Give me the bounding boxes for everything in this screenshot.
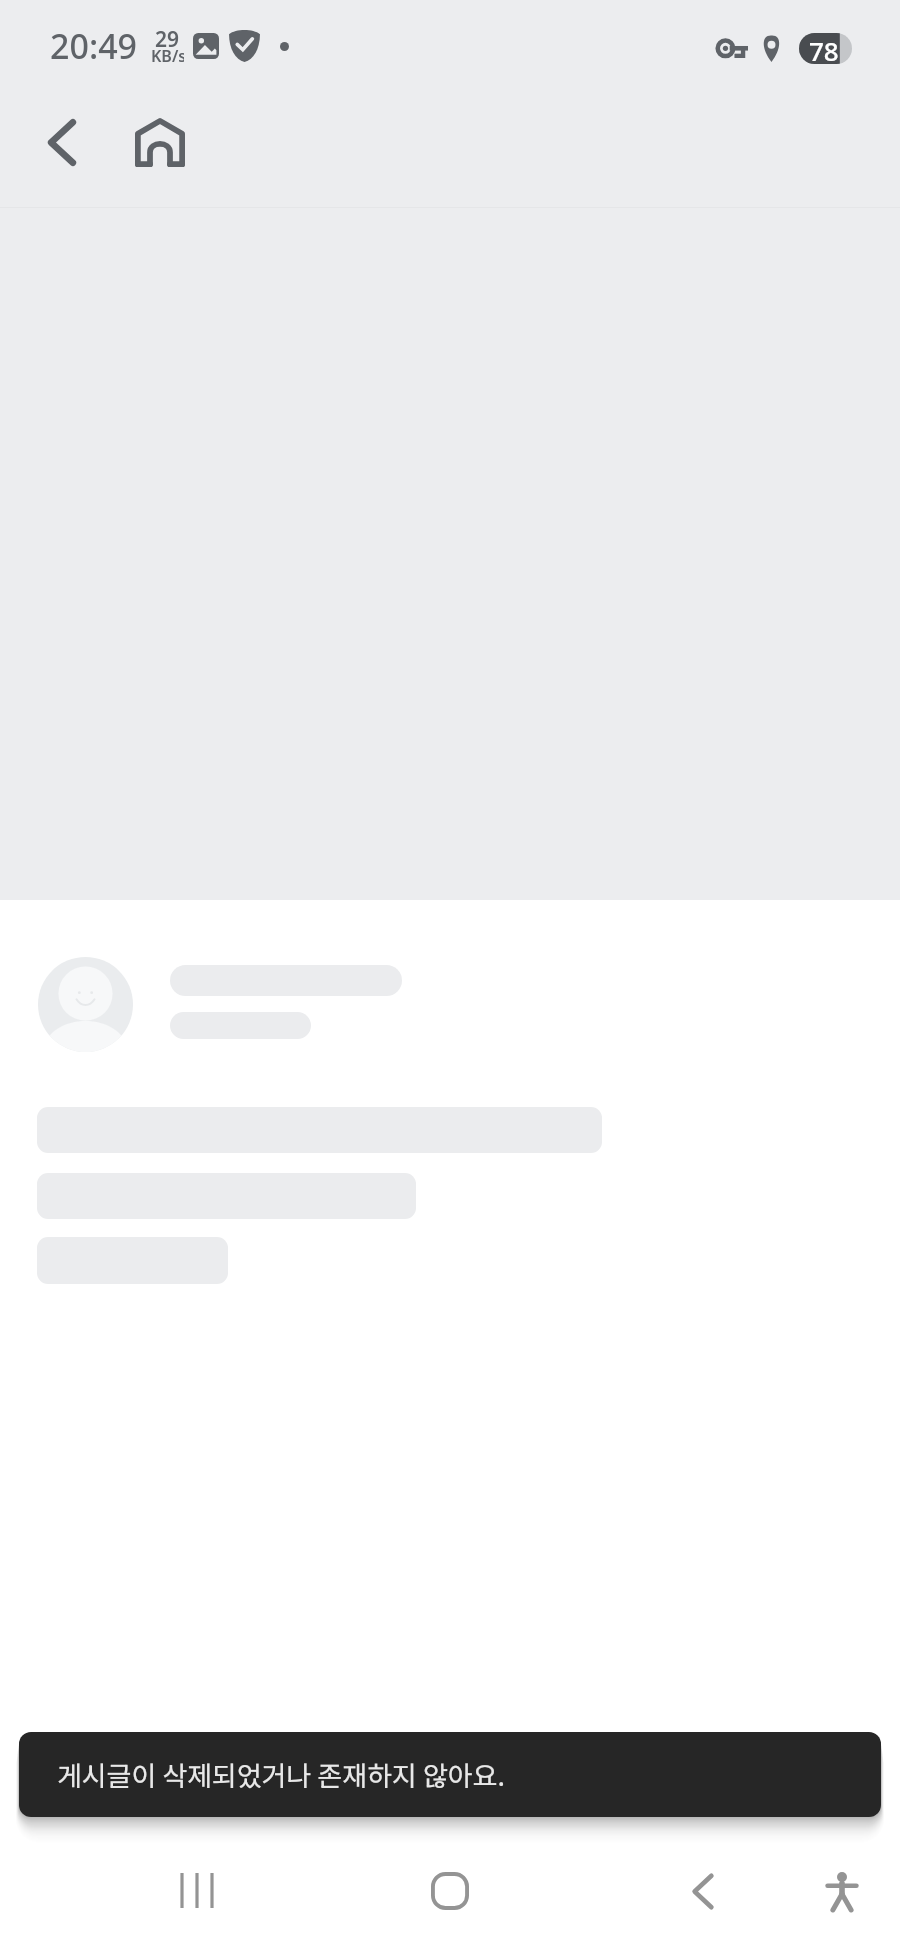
staticText: 20:49 bbox=[50, 23, 138, 69]
button[interactable]: Accessibility bbox=[797, 1847, 887, 1937]
staticText: 29 bbox=[155, 25, 180, 54]
button[interactable]: 게시글이 삭제되었거나 존재하지 않아요. bbox=[19, 1732, 881, 1817]
button[interactable]: Home bbox=[405, 1846, 495, 1936]
button[interactable]: Home bbox=[110, 92, 210, 192]
staticText: KB/s bbox=[151, 45, 184, 67]
staticText: 게시글이 삭제되었거나 존재하지 않아요. bbox=[57, 1755, 505, 1794]
button[interactable]: Back bbox=[14, 92, 110, 192]
staticText: 78 bbox=[809, 33, 839, 64]
button[interactable]: Back bbox=[658, 1846, 748, 1936]
button[interactable]: Recent apps bbox=[152, 1845, 242, 1935]
